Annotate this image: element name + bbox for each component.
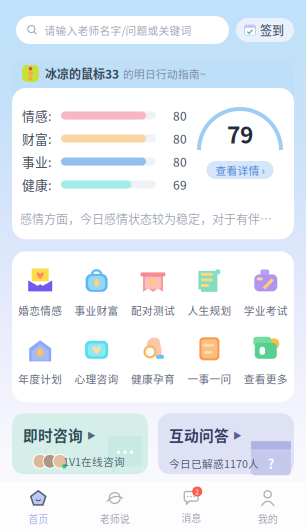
staticText: 老师说 xyxy=(100,511,130,526)
staticText: ▶ xyxy=(87,429,96,441)
staticText: 首页 xyxy=(28,511,48,526)
staticText: 我的 xyxy=(258,511,278,526)
staticText: 人生规划 xyxy=(187,302,231,318)
button[interactable]: 人生规划 xyxy=(181,266,238,318)
button[interactable]: 健康孕育 xyxy=(125,335,181,386)
staticText: 消息 xyxy=(181,510,201,525)
staticText: 年度计划 xyxy=(18,371,62,386)
button[interactable]: 我的 xyxy=(229,489,306,526)
button[interactable]: 2 xyxy=(153,490,229,525)
staticText: 80 xyxy=(173,107,187,124)
staticText: 今日已解惑1170人 xyxy=(169,455,259,471)
staticText: 80 xyxy=(173,153,187,170)
staticText: 配对测试 xyxy=(131,302,175,318)
button[interactable]: 查看更多 xyxy=(238,335,294,386)
button[interactable]: 查看详情 › xyxy=(206,161,273,179)
button[interactable]: 老师说 xyxy=(76,489,153,526)
button[interactable]: 心理咨询 xyxy=(68,335,125,386)
staticText: 事业财富 xyxy=(75,302,119,318)
staticText: 感情方面，今日感情状态较为稳定，对于有伴… xyxy=(20,210,272,227)
staticText: 1V1在线咨询 xyxy=(63,453,125,469)
staticText: 签到 xyxy=(260,21,284,39)
button[interactable]: 年度计划 xyxy=(12,335,68,386)
button[interactable]: 即时咨询 xyxy=(12,413,148,474)
staticText: 查看详情 › xyxy=(215,162,264,178)
staticText: 冰凉的鼠标33 xyxy=(45,65,119,82)
staticText: ▶ xyxy=(233,429,242,441)
button[interactable]: 请输入老师名字/问题或关键词 xyxy=(16,16,229,44)
staticText: 事业: xyxy=(22,152,52,171)
staticText: 79 xyxy=(227,117,253,150)
button[interactable]: 配对测试 xyxy=(125,266,181,318)
staticText: 学业考试 xyxy=(244,302,288,318)
staticText: 一事一问 xyxy=(187,371,231,386)
staticText: 69 xyxy=(173,176,187,193)
staticText: ? xyxy=(267,454,274,473)
staticText: 2 xyxy=(195,487,199,496)
staticText: 婚恋情感 xyxy=(18,302,62,318)
button[interactable]: 事业财富 xyxy=(68,266,125,318)
staticText: 即时咨询 xyxy=(23,424,83,445)
staticText: 互动问答 xyxy=(169,424,229,445)
staticText: 心理咨询 xyxy=(75,371,119,386)
staticText: 健康孕育 xyxy=(131,371,175,386)
staticText: 请输入老师名字/问题或关键词 xyxy=(44,22,191,38)
button[interactable]: 签到 xyxy=(236,18,294,42)
button[interactable]: ? xyxy=(158,413,294,474)
staticText: 查看更多 xyxy=(244,371,288,386)
staticText: 80 xyxy=(173,130,187,147)
button[interactable]: 婚恋情感 xyxy=(12,266,68,318)
staticText: 的明日行动指南~ xyxy=(123,66,206,81)
staticText: 财富: xyxy=(22,129,52,148)
button[interactable]: 一事一问 xyxy=(181,335,238,386)
button[interactable]: 学业考试 xyxy=(238,266,294,318)
staticText: 健康: xyxy=(22,175,52,194)
button[interactable]: 首页 xyxy=(0,489,76,526)
staticText: 情感: xyxy=(22,106,52,125)
